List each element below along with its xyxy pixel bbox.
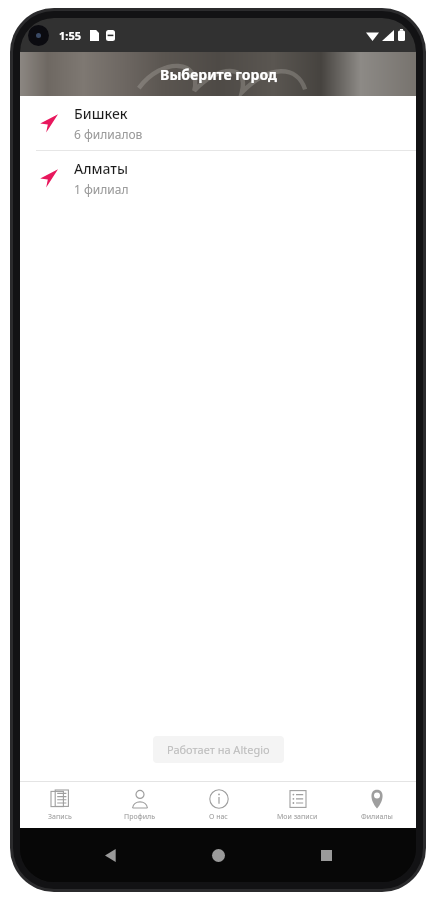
other: Филиалы [367, 789, 387, 809]
button[interactable]: О нас [179, 782, 258, 828]
staticText: Выберите город [160, 65, 277, 84]
staticText: 6 филиалов [74, 126, 143, 142]
staticText: Мои записи [277, 812, 318, 822]
button[interactable]: Работает на Altegio [153, 736, 284, 763]
staticText: О нас [209, 812, 228, 822]
button[interactable]: Алматы [20, 151, 416, 205]
staticText: Запись [48, 812, 72, 822]
staticText: Профиль [124, 812, 155, 822]
staticText: Бишкек [74, 104, 128, 123]
button[interactable]: Мои записи [258, 782, 337, 828]
staticText: Алматы [74, 159, 129, 178]
staticText: 1:55 [59, 28, 81, 43]
staticText: Работает на Altegio [167, 742, 270, 757]
button[interactable]: Запись [20, 782, 100, 828]
other: Профиль [130, 789, 150, 809]
other: Запись [50, 789, 70, 809]
staticText: 1 филиал [74, 181, 129, 197]
button[interactable]: Recent apps [309, 838, 343, 872]
other: Мои записи [288, 789, 308, 809]
button[interactable]: Home [201, 838, 235, 872]
button[interactable]: Филиалы [337, 782, 416, 828]
staticText: Филиалы [361, 812, 393, 822]
button[interactable]: Профиль [100, 782, 179, 828]
button[interactable]: Back [94, 838, 128, 872]
button[interactable]: Бишкек [20, 96, 416, 150]
other: О нас [209, 789, 229, 809]
